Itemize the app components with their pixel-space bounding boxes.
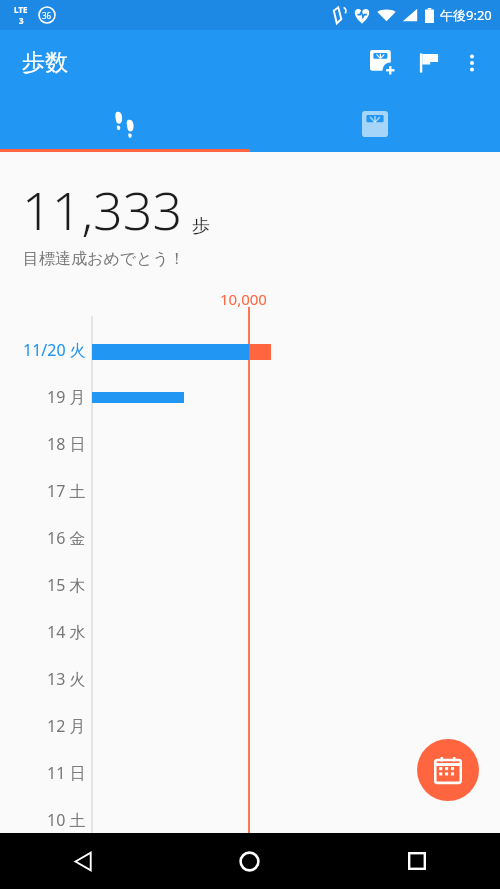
button[interactable]: 15 木: [0, 565, 86, 605]
staticText: 歩数: [22, 48, 68, 77]
staticText: 18 日: [47, 433, 86, 455]
staticText: 目標達成おめでとう！: [23, 249, 185, 269]
staticText: 11,333: [22, 174, 183, 245]
button[interactable]: 17 土: [0, 471, 86, 511]
button[interactable]: 14 水: [0, 612, 86, 652]
button[interactable]: 16 金: [0, 518, 86, 558]
button[interactable]: Recent apps: [333, 833, 500, 889]
staticText: 36: [42, 10, 52, 21]
staticText: 10 土: [47, 809, 86, 831]
staticText: 午後9:20: [440, 6, 492, 24]
button[interactable]: Home: [166, 833, 333, 889]
button[interactable]: 18 日: [0, 424, 86, 464]
button[interactable]: Weight tab: [250, 95, 500, 152]
button[interactable]: Calendar: [417, 739, 479, 801]
staticText: 11 日: [47, 762, 86, 784]
staticText: 10,000: [220, 289, 267, 309]
staticText: 17 土: [47, 480, 86, 502]
staticText: 3: [19, 15, 24, 26]
staticText: 14 水: [47, 621, 86, 643]
staticText: 19 月: [47, 386, 86, 408]
button[interactable]: 12 月: [0, 706, 86, 746]
staticText: 12 月: [47, 715, 86, 737]
button[interactable]: Steps tab: [0, 95, 250, 152]
button[interactable]: 11 日: [0, 753, 86, 793]
button[interactable]: 13 火: [0, 659, 86, 699]
staticText: 13 火: [47, 668, 86, 690]
button[interactable]: Add weight: [360, 40, 406, 86]
staticText: 歩: [192, 215, 210, 238]
button[interactable]: 19 月: [0, 377, 86, 417]
button[interactable]: Back: [0, 833, 166, 889]
button[interactable]: 11/20 火: [0, 330, 86, 370]
staticText: 16 金: [47, 527, 86, 549]
staticText: 11/20 火: [23, 339, 86, 361]
button[interactable]: Goal: [406, 40, 452, 86]
staticText: LTE: [14, 4, 28, 15]
button[interactable]: 10 土: [0, 800, 86, 840]
staticText: 15 木: [47, 574, 86, 596]
button[interactable]: More options: [452, 43, 492, 83]
